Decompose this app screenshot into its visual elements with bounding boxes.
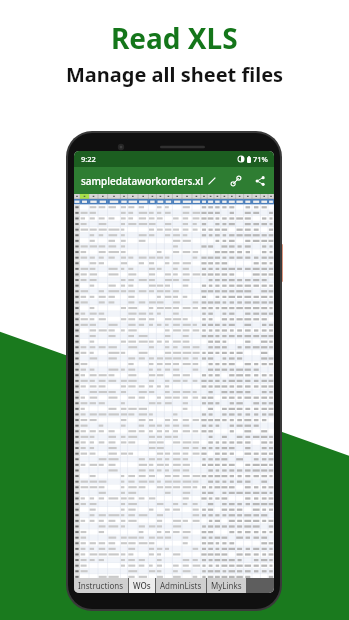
- staticText: AdminLists: [160, 580, 202, 591]
- staticText: MyLinks: [211, 580, 242, 591]
- button[interactable]: WOs: [129, 578, 155, 593]
- staticText: Read XLS: [111, 19, 238, 57]
- staticText: WOs: [133, 580, 151, 591]
- button[interactable]: AdminLists: [156, 578, 206, 593]
- button[interactable]: Edit: [204, 173, 219, 188]
- button[interactable]: Instructions: [74, 578, 128, 593]
- button[interactable]: [74, 194, 274, 578]
- staticText: 9:22: [81, 154, 96, 164]
- staticText: Manage all sheet files: [66, 61, 284, 88]
- staticText: sampledataworkorders.xl…: [81, 174, 204, 188]
- staticText: 71%: [253, 154, 268, 164]
- staticText: Instructions: [78, 580, 124, 591]
- button[interactable]: Link: [228, 173, 243, 188]
- button[interactable]: MyLinks: [207, 578, 246, 593]
- button[interactable]: Share: [252, 173, 267, 188]
